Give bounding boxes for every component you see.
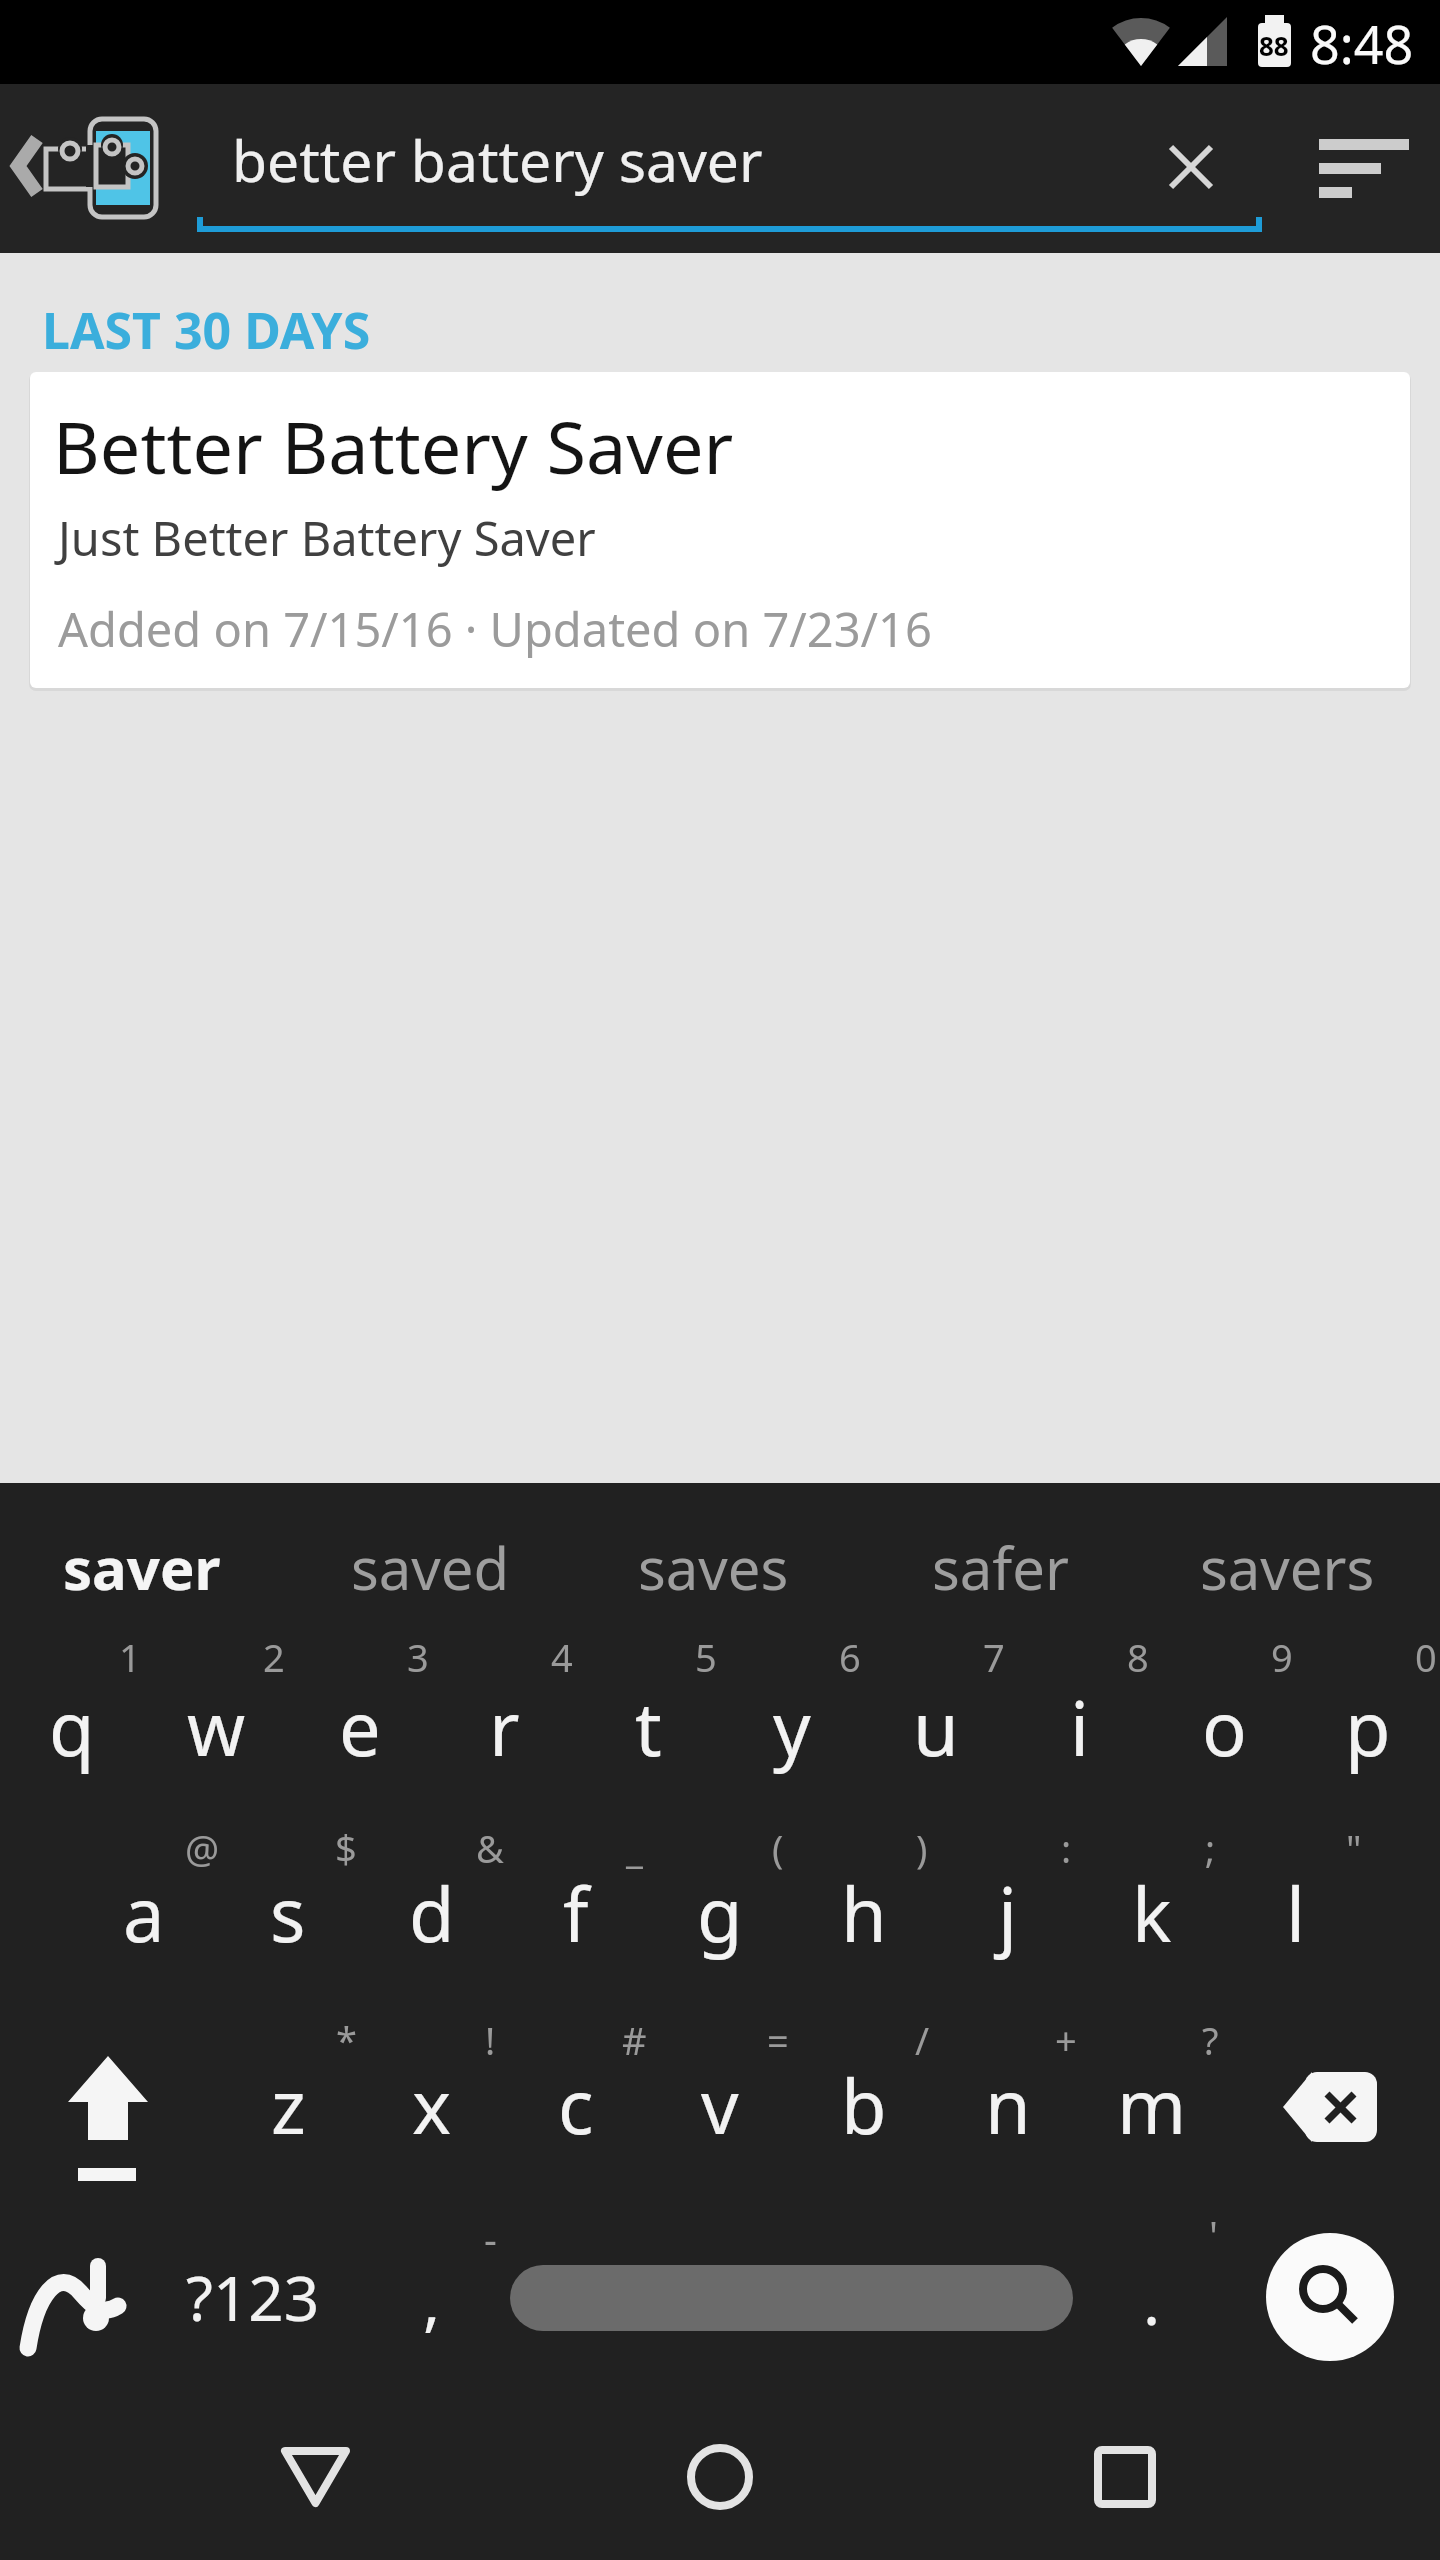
- staticText: 0: [1415, 1631, 1437, 1683]
- staticText: #: [622, 2014, 647, 2066]
- staticText: (: [772, 1822, 784, 1874]
- staticText: 2: [263, 1631, 285, 1683]
- staticText: i: [1070, 1677, 1090, 1778]
- staticText: *: [336, 2014, 357, 2066]
- staticText: 3: [407, 1631, 429, 1683]
- staticText: LAST 30 DAYS: [42, 296, 371, 364]
- staticText: l: [1286, 1863, 1306, 1964]
- staticText: $: [335, 1822, 357, 1874]
- staticText: savers: [1200, 1528, 1375, 1607]
- staticText: u: [913, 1677, 959, 1778]
- staticText: 1: [119, 1631, 141, 1683]
- staticText: d: [409, 1863, 455, 1964]
- staticText: r: [489, 1677, 520, 1778]
- staticText: ,: [423, 2257, 441, 2344]
- staticText: v: [701, 2055, 739, 2156]
- staticText: @: [185, 1822, 220, 1874]
- staticText: &: [476, 1822, 504, 1874]
- staticText: h: [841, 1863, 887, 1964]
- staticText: Better Battery Saver: [53, 397, 734, 495]
- staticText: f: [563, 1863, 589, 1964]
- staticText: z: [271, 2055, 306, 2156]
- staticText: -: [484, 2211, 497, 2265]
- staticText: /: [915, 2014, 930, 2066]
- staticText: w: [187, 1677, 246, 1778]
- staticText: x: [412, 2055, 452, 2156]
- staticText: +: [1055, 2014, 1077, 2066]
- staticText: 4: [551, 1631, 573, 1683]
- staticText: k: [1132, 1863, 1172, 1964]
- staticText: _: [626, 1822, 643, 1874]
- staticText: saver: [63, 1528, 221, 1607]
- staticText: y: [773, 1677, 811, 1778]
- staticText: better battery saver: [232, 121, 763, 199]
- staticText: ?123: [186, 2255, 320, 2339]
- staticText: ": [1346, 1822, 1362, 1874]
- staticText: j: [998, 1863, 1018, 1964]
- staticText: saves: [638, 1528, 789, 1607]
- staticText: Added on 7/15/16 · Updated on 7/23/16: [58, 597, 932, 661]
- staticText: o: [1202, 1677, 1247, 1778]
- staticText: p: [1345, 1677, 1391, 1778]
- staticText: c: [558, 2055, 594, 2156]
- staticText: e: [339, 1677, 381, 1778]
- staticText: ): [916, 1822, 928, 1874]
- staticText: ;: [1205, 1822, 1216, 1874]
- staticText: q: [49, 1677, 95, 1778]
- staticText: n: [985, 2055, 1031, 2156]
- staticText: g: [697, 1863, 743, 1964]
- staticText: 5: [695, 1631, 717, 1683]
- staticText: b: [841, 2055, 887, 2156]
- staticText: =: [767, 2014, 789, 2066]
- staticText: s: [270, 1863, 306, 1964]
- staticText: a: [123, 1863, 165, 1964]
- staticText: t: [635, 1677, 662, 1778]
- staticText: 8:48: [1310, 8, 1414, 79]
- staticText: :: [1061, 1822, 1072, 1874]
- staticText: 8: [1127, 1631, 1149, 1683]
- staticText: m: [1117, 2055, 1187, 2156]
- staticText: 6: [839, 1631, 861, 1683]
- staticText: Just Better Battery Saver: [58, 506, 596, 570]
- staticText: .: [1143, 2257, 1161, 2344]
- staticText: ': [1209, 2208, 1218, 2262]
- staticText: 9: [1271, 1631, 1293, 1683]
- staticText: safer: [932, 1528, 1069, 1607]
- staticText: saved: [351, 1528, 510, 1607]
- staticText: ?: [1202, 2014, 1219, 2066]
- staticText: 7: [983, 1631, 1005, 1683]
- staticText: 88: [1259, 28, 1289, 63]
- staticText: !: [485, 2014, 496, 2066]
